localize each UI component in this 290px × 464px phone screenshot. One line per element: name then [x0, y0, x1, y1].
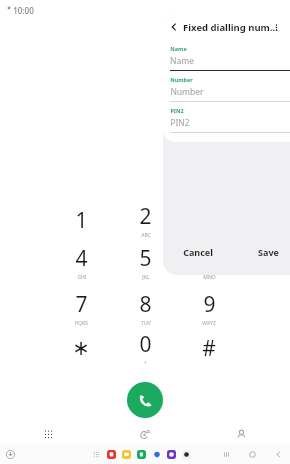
button[interactable]: 0: [119, 327, 171, 369]
staticText: 2: [139, 202, 152, 231]
staticText: 9: [203, 290, 216, 319]
staticText: 10:00: [13, 5, 34, 16]
button[interactable]: 4: [55, 241, 107, 283]
button[interactable]: #: [183, 327, 235, 369]
button[interactable]: Recents: [96, 424, 193, 454]
button[interactable]: Back: [272, 448, 284, 460]
staticText: Number: [170, 86, 204, 98]
staticText: 5: [139, 244, 152, 273]
staticText: 4: [75, 244, 88, 273]
staticText: #: [202, 334, 216, 363]
staticText: WXYZ: [202, 320, 216, 327]
button[interactable]: 2: [119, 199, 171, 241]
button[interactable]: App: [121, 449, 132, 460]
staticText: +: [144, 360, 147, 367]
staticText: ∗: [72, 336, 90, 360]
button[interactable]: 6: [183, 241, 235, 283]
button[interactable]: ∗: [55, 327, 107, 369]
staticText: GHI: [77, 274, 87, 281]
button[interactable]: Recent apps: [220, 448, 232, 460]
staticText: PQRS: [75, 320, 88, 327]
button[interactable]: Cancel: [163, 237, 233, 267]
staticText: MNO: [203, 274, 216, 281]
staticText: JKL: [142, 274, 150, 281]
staticText: 1: [75, 206, 88, 235]
staticText: PIN2: [170, 117, 190, 129]
staticText: Number: [170, 76, 193, 83]
button[interactable]: 5: [119, 241, 171, 283]
staticText: Name: [170, 45, 187, 52]
staticText: 8: [139, 290, 152, 319]
button[interactable]: 1: [55, 199, 107, 241]
button[interactable]: Save: [233, 237, 290, 267]
button[interactable]: App: [136, 449, 147, 460]
staticText: Save: [258, 246, 279, 258]
button[interactable]: App: [106, 449, 117, 460]
button[interactable]: App: [181, 449, 192, 460]
button[interactable]: Call: [127, 382, 163, 418]
staticText: TUV: [141, 320, 151, 327]
button[interactable]: 9: [183, 287, 235, 329]
staticText: Fixed dialling num…: [183, 21, 278, 34]
button[interactable]: More options: [268, 19, 284, 35]
button[interactable]: Keypad: [0, 424, 96, 454]
button[interactable]: 8: [119, 287, 171, 329]
button[interactable]: All apps: [91, 449, 102, 460]
button[interactable]: Messages: [151, 449, 162, 460]
button[interactable]: Back: [165, 18, 183, 36]
staticText: Name: [170, 55, 194, 67]
button[interactable]: 7: [55, 287, 107, 329]
button[interactable]: App: [166, 449, 177, 460]
button[interactable]: Contacts: [193, 424, 290, 454]
staticText: 6: [203, 244, 216, 273]
staticText: Cancel: [183, 246, 213, 258]
button[interactable]: Home: [246, 448, 258, 460]
staticText: ABC: [141, 232, 151, 239]
staticText: PIN2: [170, 107, 184, 114]
staticText: 7: [75, 290, 88, 319]
staticText: 0: [139, 330, 152, 359]
button[interactable]: Downloads: [4, 448, 17, 461]
